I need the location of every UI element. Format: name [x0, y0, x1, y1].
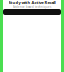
staticText: Study with Active Recall [8, 0, 55, 5]
staticText: Evidence based techniques [13, 5, 51, 9]
